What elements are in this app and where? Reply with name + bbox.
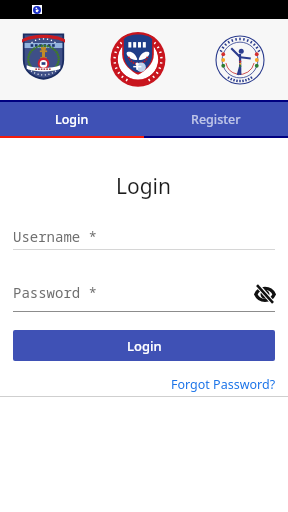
staticText: Username *	[13, 227, 97, 246]
button[interactable]: Login	[0, 102, 144, 136]
button[interactable]: Login	[13, 330, 275, 361]
staticText: Login	[55, 111, 89, 128]
button[interactable]: Show password	[251, 281, 279, 307]
button[interactable]: Register	[144, 102, 288, 136]
staticText: Forgot Password?	[171, 376, 276, 393]
staticText: Login	[116, 172, 172, 201]
button[interactable]: Forgot Password?	[166, 374, 278, 394]
staticText: Register	[191, 111, 241, 128]
staticText: Login	[127, 337, 162, 355]
staticText: Password *	[13, 283, 97, 302]
